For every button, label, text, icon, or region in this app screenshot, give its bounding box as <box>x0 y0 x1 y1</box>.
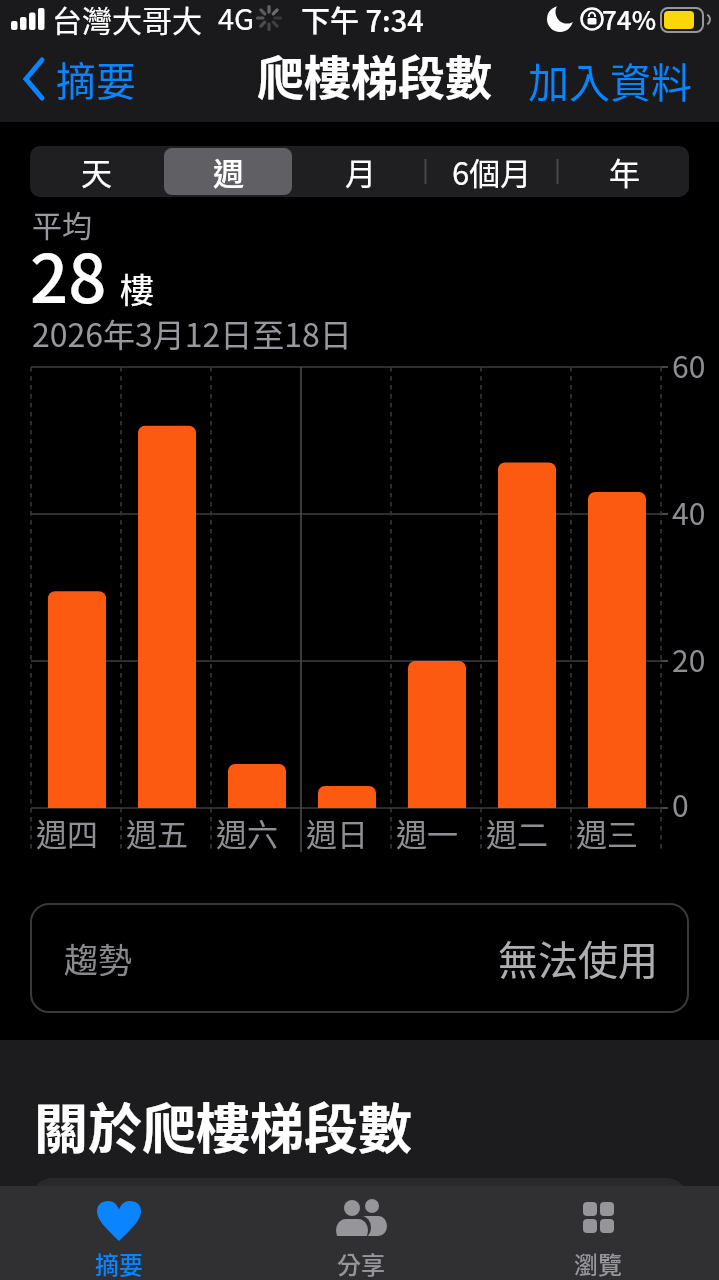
staticText: 74% <box>602 0 657 38</box>
staticText: 20 <box>672 637 706 680</box>
staticText: 週一 <box>396 810 458 855</box>
staticText: 下午 7:34 <box>301 0 424 40</box>
staticText: 無法使用 <box>498 929 658 987</box>
staticText: 關於爬樓梯段數 <box>34 1086 412 1164</box>
button[interactable]: 年 <box>558 146 690 197</box>
staticText: 週五 <box>126 810 188 855</box>
staticText: 週日 <box>306 810 368 855</box>
staticText: 摘要 <box>95 1246 143 1280</box>
staticText: 瀏覽 <box>574 1246 622 1280</box>
staticText: 週四 <box>36 810 98 855</box>
staticText: 60 <box>672 343 706 386</box>
staticText: 樓 <box>120 264 154 313</box>
staticText: 加入資料 <box>528 50 692 109</box>
button[interactable] <box>281 1186 441 1280</box>
staticText: 天 <box>81 149 112 194</box>
button[interactable] <box>12 48 152 110</box>
button[interactable] <box>40 1186 200 1280</box>
staticText: 平均 <box>32 202 92 245</box>
button[interactable]: 天 <box>30 146 162 197</box>
staticText: 爬樓梯段數 <box>257 40 492 108</box>
staticText: 2026年3月12日至18日 <box>32 310 352 356</box>
button[interactable]: 6個月 <box>426 146 558 197</box>
button[interactable] <box>518 1186 678 1280</box>
staticText: 6個月 <box>452 149 532 194</box>
button[interactable] <box>520 48 705 110</box>
staticText: 40 <box>672 490 706 533</box>
staticText: 年 <box>609 149 640 194</box>
staticText: 月 <box>345 149 376 194</box>
button[interactable] <box>30 903 689 1013</box>
staticText: 28 <box>30 225 107 322</box>
staticText: 摘要 <box>56 50 136 108</box>
staticText: 週 <box>213 149 244 194</box>
staticText: 週二 <box>486 810 548 855</box>
staticText: 週三 <box>576 810 638 855</box>
staticText: 分享 <box>337 1246 385 1280</box>
staticText: 趨勢 <box>64 934 132 983</box>
staticText: 週六 <box>216 810 278 855</box>
button[interactable]: 週 <box>162 146 294 197</box>
staticText: 0 <box>672 782 689 825</box>
staticText: 台灣大哥大 <box>52 0 202 40</box>
button[interactable]: 月 <box>294 146 426 197</box>
staticText: 4G <box>218 0 255 38</box>
